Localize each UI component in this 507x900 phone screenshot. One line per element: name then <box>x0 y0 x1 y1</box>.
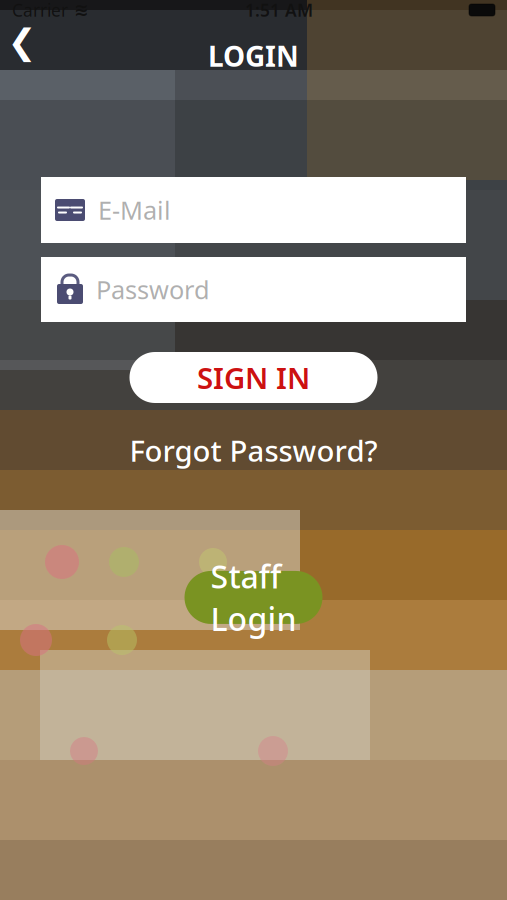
staticText: Forgot Password? <box>129 431 377 470</box>
staticText: Staff Login <box>210 555 296 640</box>
button[interactable]: SIGN IN <box>129 352 377 403</box>
button[interactable]: Forgot Password? <box>117 425 389 476</box>
button[interactable]: Password <box>41 257 466 322</box>
staticText: 1:51 AM <box>245 0 313 21</box>
staticText: E-Mail <box>98 193 171 227</box>
staticText: LOGIN <box>208 37 299 75</box>
button[interactable]: Back <box>0 20 44 64</box>
staticText: ≋ <box>74 0 89 20</box>
button[interactable]: Staff Login <box>184 571 322 624</box>
staticText: SIGN IN <box>197 358 310 397</box>
button[interactable]: E-Mail <box>41 177 466 243</box>
staticText: Carrier <box>12 0 68 21</box>
staticText: ❮ <box>7 22 36 62</box>
staticText: Password <box>96 273 210 306</box>
